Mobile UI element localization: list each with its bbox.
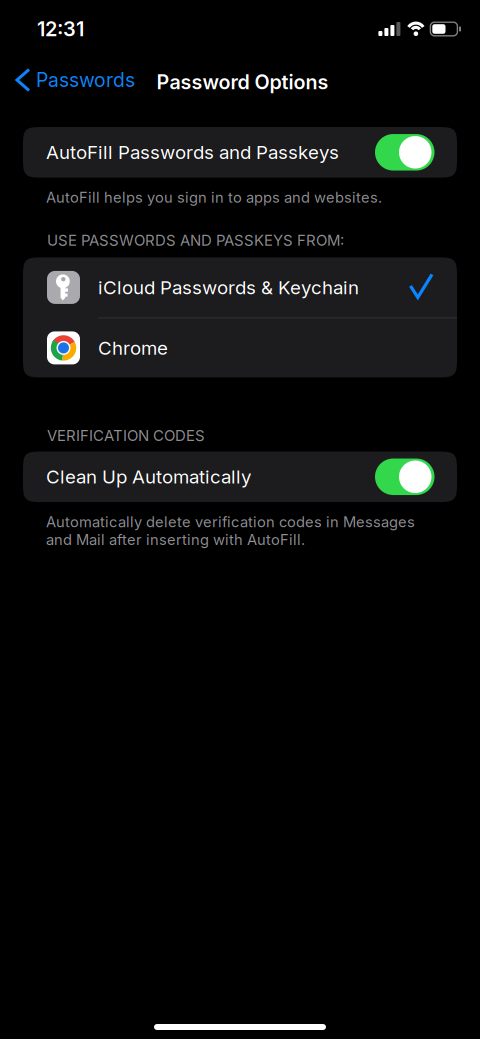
staticText: AutoFill helps you sign in to apps and w… <box>46 189 382 206</box>
button[interactable]: AutoFill Passwords and Passkeys <box>23 127 457 178</box>
staticText: 12:31 <box>37 17 84 41</box>
staticText: Chrome <box>98 337 168 359</box>
staticText: VERIFICATION CODES <box>47 426 205 444</box>
staticText: Password Options <box>156 70 328 94</box>
staticText: Automatically delete verification codes … <box>46 513 415 549</box>
staticText: Clean Up Automatically <box>46 465 251 488</box>
staticText: iCloud Passwords & Keychain <box>98 276 359 299</box>
staticText: USE PASSWORDS AND PASSKEYS FROM: <box>47 231 344 249</box>
staticText: AutoFill Passwords and Passkeys <box>46 141 339 164</box>
button[interactable]: iCloud Passwords & Keychain <box>23 257 457 317</box>
staticText: Passwords <box>36 68 135 92</box>
button[interactable]: Passwords <box>0 59 145 101</box>
button[interactable]: Clean Up Automatically <box>23 451 457 502</box>
button[interactable]: Chrome <box>23 318 457 377</box>
